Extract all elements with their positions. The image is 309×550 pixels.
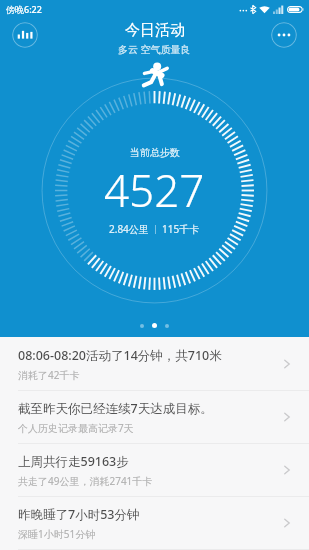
button[interactable]: Statistics	[12, 22, 38, 48]
staticText: 当前总步数	[130, 146, 180, 159]
button[interactable]: 截至昨天你已经连续7天达成目标。	[0, 391, 309, 444]
staticText: 傍晚6:22	[6, 3, 42, 15]
staticText: 上周共行走59163步	[18, 453, 129, 470]
staticText: 截至昨天你已经连续7天达成目标。	[18, 400, 213, 417]
staticText: 2.84公里	[109, 222, 149, 236]
staticText: 多云 空气质量良	[118, 42, 191, 56]
staticText: 4527	[104, 160, 205, 220]
staticText: 共走了49公里，消耗2741千卡	[18, 474, 153, 488]
other: Open details	[279, 409, 295, 425]
button[interactable]: 08:06-08:20活动了14分钟，共710米	[0, 338, 309, 391]
other: Open details	[279, 356, 295, 372]
staticText: 深睡1小时51分钟	[18, 527, 96, 541]
button[interactable]: 昨晚睡了7小时53分钟	[0, 497, 309, 550]
staticText: 个人历史记录最高记录7天	[18, 421, 134, 435]
staticText: 消耗了42千卡	[18, 368, 80, 382]
staticText: 昨晚睡了7小时53分钟	[18, 506, 140, 523]
other: Open details	[279, 515, 295, 531]
other: Open details	[279, 462, 295, 478]
staticText: 08:06-08:20活动了14分钟，共710米	[18, 347, 222, 364]
button[interactable]: 上周共行走59163步	[0, 444, 309, 497]
button[interactable]: More options	[271, 22, 297, 48]
staticText: 今日活动	[125, 21, 185, 40]
staticText: 115千卡	[162, 222, 200, 236]
